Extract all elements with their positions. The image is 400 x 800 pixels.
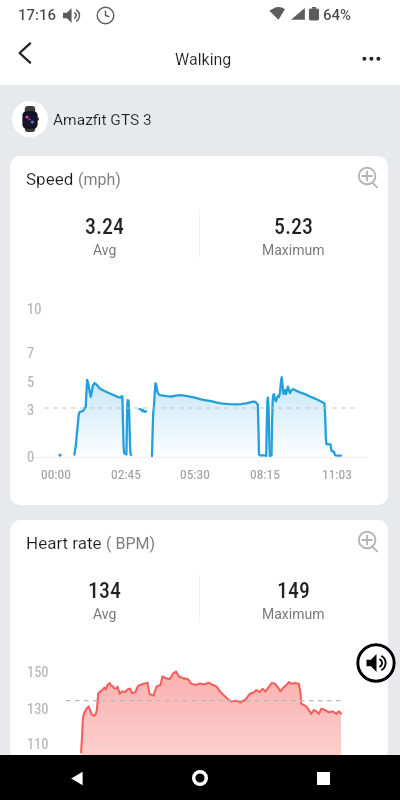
staticText: 11:03 (322, 466, 352, 482)
staticText: 3.24 (85, 214, 125, 240)
staticText: Avg (93, 242, 117, 258)
button[interactable]: Zoom in (349, 522, 385, 558)
staticText: 130 (27, 701, 49, 718)
button[interactable]: Recents (303, 758, 343, 798)
button[interactable]: Back (57, 758, 97, 798)
staticText: 08:15 (250, 466, 280, 482)
button[interactable]: Back (3, 37, 47, 81)
staticText: 7 (27, 345, 35, 362)
staticText: 17:16 (18, 6, 57, 24)
button[interactable]: Home (180, 758, 220, 798)
staticText: 110 (27, 736, 49, 753)
staticText: 02:45 (111, 466, 141, 482)
button[interactable]: Sound (356, 643, 396, 683)
button[interactable]: Speed (10, 156, 388, 505)
staticText: 05:30 (180, 466, 210, 482)
staticText: 149 (277, 578, 310, 604)
button[interactable]: Amazfit GTS 3 device (12, 101, 48, 137)
staticText: Walking (175, 50, 232, 69)
staticText: 5 (27, 374, 35, 391)
button[interactable]: More options (349, 37, 393, 81)
staticText: Maximum (262, 606, 325, 622)
staticText: 00:00 (41, 466, 71, 482)
staticText: ( BPM) (102, 534, 156, 553)
staticText: Speed (26, 169, 74, 189)
staticText: Avg (93, 606, 117, 622)
staticText: 10 (27, 301, 42, 318)
staticText: 0 (27, 449, 35, 466)
staticText: 134 (88, 578, 121, 604)
staticText: Amazfit GTS 3 (53, 111, 152, 129)
staticText: Heart rate (26, 533, 102, 553)
button[interactable]: Heart rate (10, 520, 388, 760)
staticText: Maximum (262, 242, 325, 258)
staticText: 150 (27, 664, 49, 681)
staticText: (mph) (74, 170, 121, 189)
staticText: 3 (27, 402, 35, 419)
button[interactable]: Zoom in (349, 158, 385, 194)
staticText: 64% (323, 6, 352, 24)
staticText: 5.23 (274, 214, 314, 240)
